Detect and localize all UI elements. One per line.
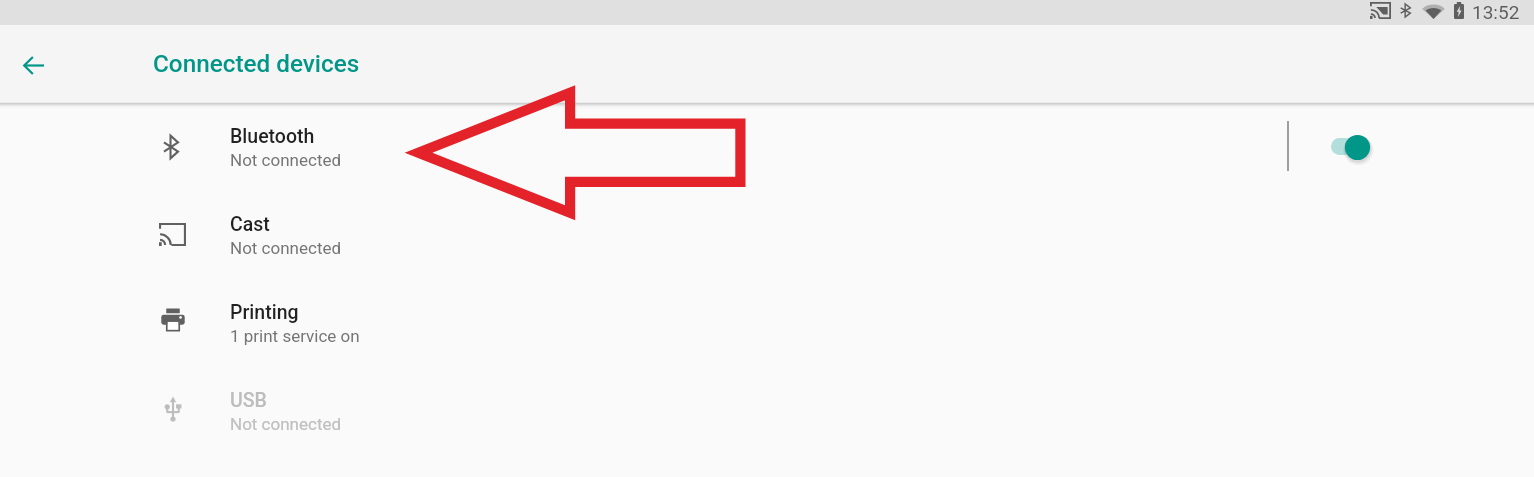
button[interactable]: Bluetooth [0, 108, 1534, 196]
other: Wi-Fi signal full [1422, 3, 1445, 19]
other: Bluetooth on [1400, 3, 1411, 18]
staticText: Not connected [230, 238, 342, 258]
button[interactable]: USB [0, 372, 1534, 460]
staticText: 13:52 [1472, 1, 1520, 23]
staticText: Printing [230, 301, 299, 324]
staticText: Cast [230, 213, 270, 236]
staticText: Not connected [230, 150, 342, 170]
button[interactable]: Cast [0, 196, 1534, 284]
staticText: Bluetooth [230, 125, 315, 148]
button[interactable]: Bluetooth on/off [1317, 117, 1397, 187]
staticText: USB [230, 389, 267, 412]
staticText: 1 print service on [230, 326, 360, 346]
button[interactable]: Printing [0, 284, 1534, 372]
staticText: Not connected [230, 414, 342, 434]
other: Casting [1370, 2, 1391, 19]
staticText: Connected devices [153, 49, 360, 77]
other: Battery charging [1454, 2, 1464, 19]
button[interactable]: Navigate up [9, 41, 57, 89]
